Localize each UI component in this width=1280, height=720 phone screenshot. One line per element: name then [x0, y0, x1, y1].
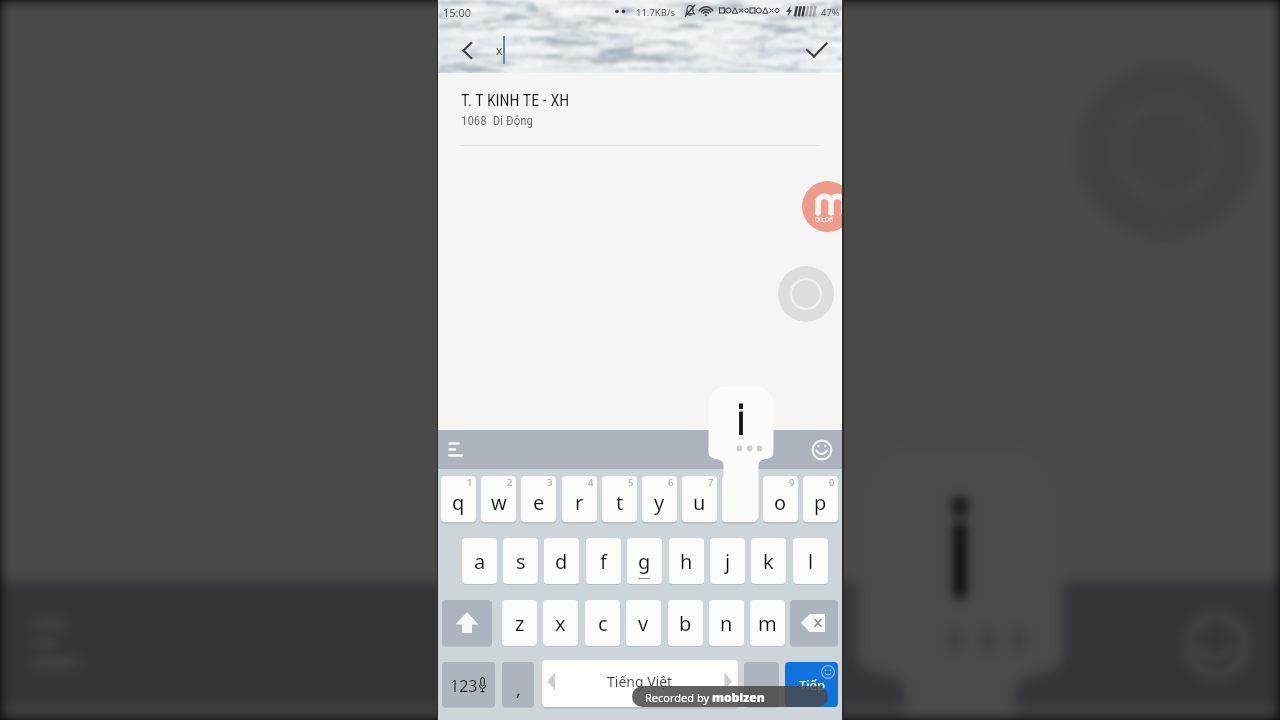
staticText: T. T KINH TE - XH [461, 91, 570, 110]
staticText: 7 [708, 476, 714, 489]
button[interactable]: Mobizen recorder [802, 181, 842, 232]
button[interactable]: i [722, 476, 757, 522]
staticText: a [474, 548, 486, 575]
staticText: t [616, 489, 624, 516]
staticText: 47% [821, 6, 840, 19]
staticText: 1 [467, 476, 473, 489]
staticText: x [496, 42, 503, 58]
staticText: 2 [507, 476, 513, 489]
staticText: w [491, 489, 507, 516]
staticText: d [555, 548, 568, 575]
staticText: c [598, 610, 608, 637]
staticText: 4 [588, 476, 594, 489]
button[interactable]: Numbers and voice input [442, 662, 495, 707]
staticText: x [555, 610, 566, 637]
staticText: mobizen [712, 689, 765, 705]
button[interactable]: Emoji [798, 430, 842, 469]
staticText: 15:00 [443, 5, 472, 20]
button[interactable]: s [503, 538, 538, 584]
staticText: 6 [668, 476, 674, 489]
staticText: , [516, 677, 521, 702]
button[interactable]: r [562, 476, 597, 522]
button[interactable]: g [627, 538, 662, 584]
staticText: Recorded by [645, 690, 712, 705]
staticText: 5 [628, 476, 634, 489]
button[interactable]: Keyboard menu [0, 582, 127, 705]
staticText: g [638, 548, 651, 575]
staticText: 3 [547, 476, 553, 489]
staticText: j [725, 548, 731, 575]
staticText: e [533, 489, 545, 516]
staticText: v [638, 610, 649, 637]
staticText: s [516, 548, 526, 575]
staticText: m [758, 610, 777, 637]
staticText: r [575, 489, 584, 516]
button[interactable]: T. T KINH TE - XH [438, 73, 842, 146]
button[interactable]: a [462, 538, 497, 584]
staticText: n [720, 610, 733, 637]
staticText: y [654, 489, 665, 516]
staticText: f [600, 548, 607, 575]
button[interactable]: o [763, 476, 798, 522]
staticText: 123 [450, 675, 478, 697]
button[interactable]: h [669, 538, 704, 584]
button[interactable]: w [481, 476, 516, 522]
staticText: l [808, 548, 814, 575]
button[interactable]: n [709, 600, 744, 646]
staticText: 9 [789, 476, 795, 489]
button[interactable]: k [751, 538, 786, 584]
button[interactable]: x [543, 600, 578, 646]
staticText: k [763, 548, 774, 575]
button[interactable]: Shift [442, 600, 492, 646]
button[interactable]: Back [444, 27, 490, 73]
button[interactable]: v [626, 600, 661, 646]
button[interactable]: u [682, 476, 717, 522]
staticText: Tiếp [799, 676, 825, 694]
button[interactable]: d [544, 538, 579, 584]
button[interactable]: m [750, 600, 785, 646]
button[interactable]: , [502, 662, 534, 707]
staticText: Tiếng Việt [607, 672, 673, 691]
button[interactable]: c [585, 600, 620, 646]
button[interactable]: j [710, 538, 745, 584]
staticText: o [774, 489, 787, 516]
staticText: q [452, 489, 465, 516]
button[interactable]: x [496, 27, 746, 73]
button[interactable]: Space [542, 660, 738, 707]
staticText: 0 [829, 476, 835, 489]
button[interactable]: Backspace [790, 600, 838, 646]
staticText: 1068 Di Động [461, 113, 533, 128]
button[interactable]: f [586, 538, 621, 584]
staticText: z [515, 610, 525, 637]
staticText: h [680, 548, 693, 575]
button[interactable]: Confirm [793, 27, 839, 73]
button[interactable]: p [803, 476, 838, 522]
button[interactable]: Emoji [1141, 582, 1280, 705]
button[interactable]: Keyboard menu [438, 430, 478, 469]
staticText: b [679, 610, 692, 637]
button[interactable]: Options [744, 662, 779, 707]
button[interactable]: b [668, 600, 703, 646]
button[interactable]: z [502, 600, 537, 646]
button[interactable]: Record [778, 266, 834, 322]
button[interactable]: l [793, 538, 828, 584]
staticText: u [693, 489, 706, 516]
button[interactable]: e [521, 476, 556, 522]
staticText: 11.7KB/s [636, 6, 675, 19]
button[interactable]: y [642, 476, 677, 522]
staticText: 00:06 [815, 215, 833, 225]
staticText: p [814, 489, 827, 516]
button[interactable]: Tiếp [785, 662, 838, 707]
button[interactable]: t [602, 476, 637, 522]
button[interactable]: q [441, 476, 476, 522]
